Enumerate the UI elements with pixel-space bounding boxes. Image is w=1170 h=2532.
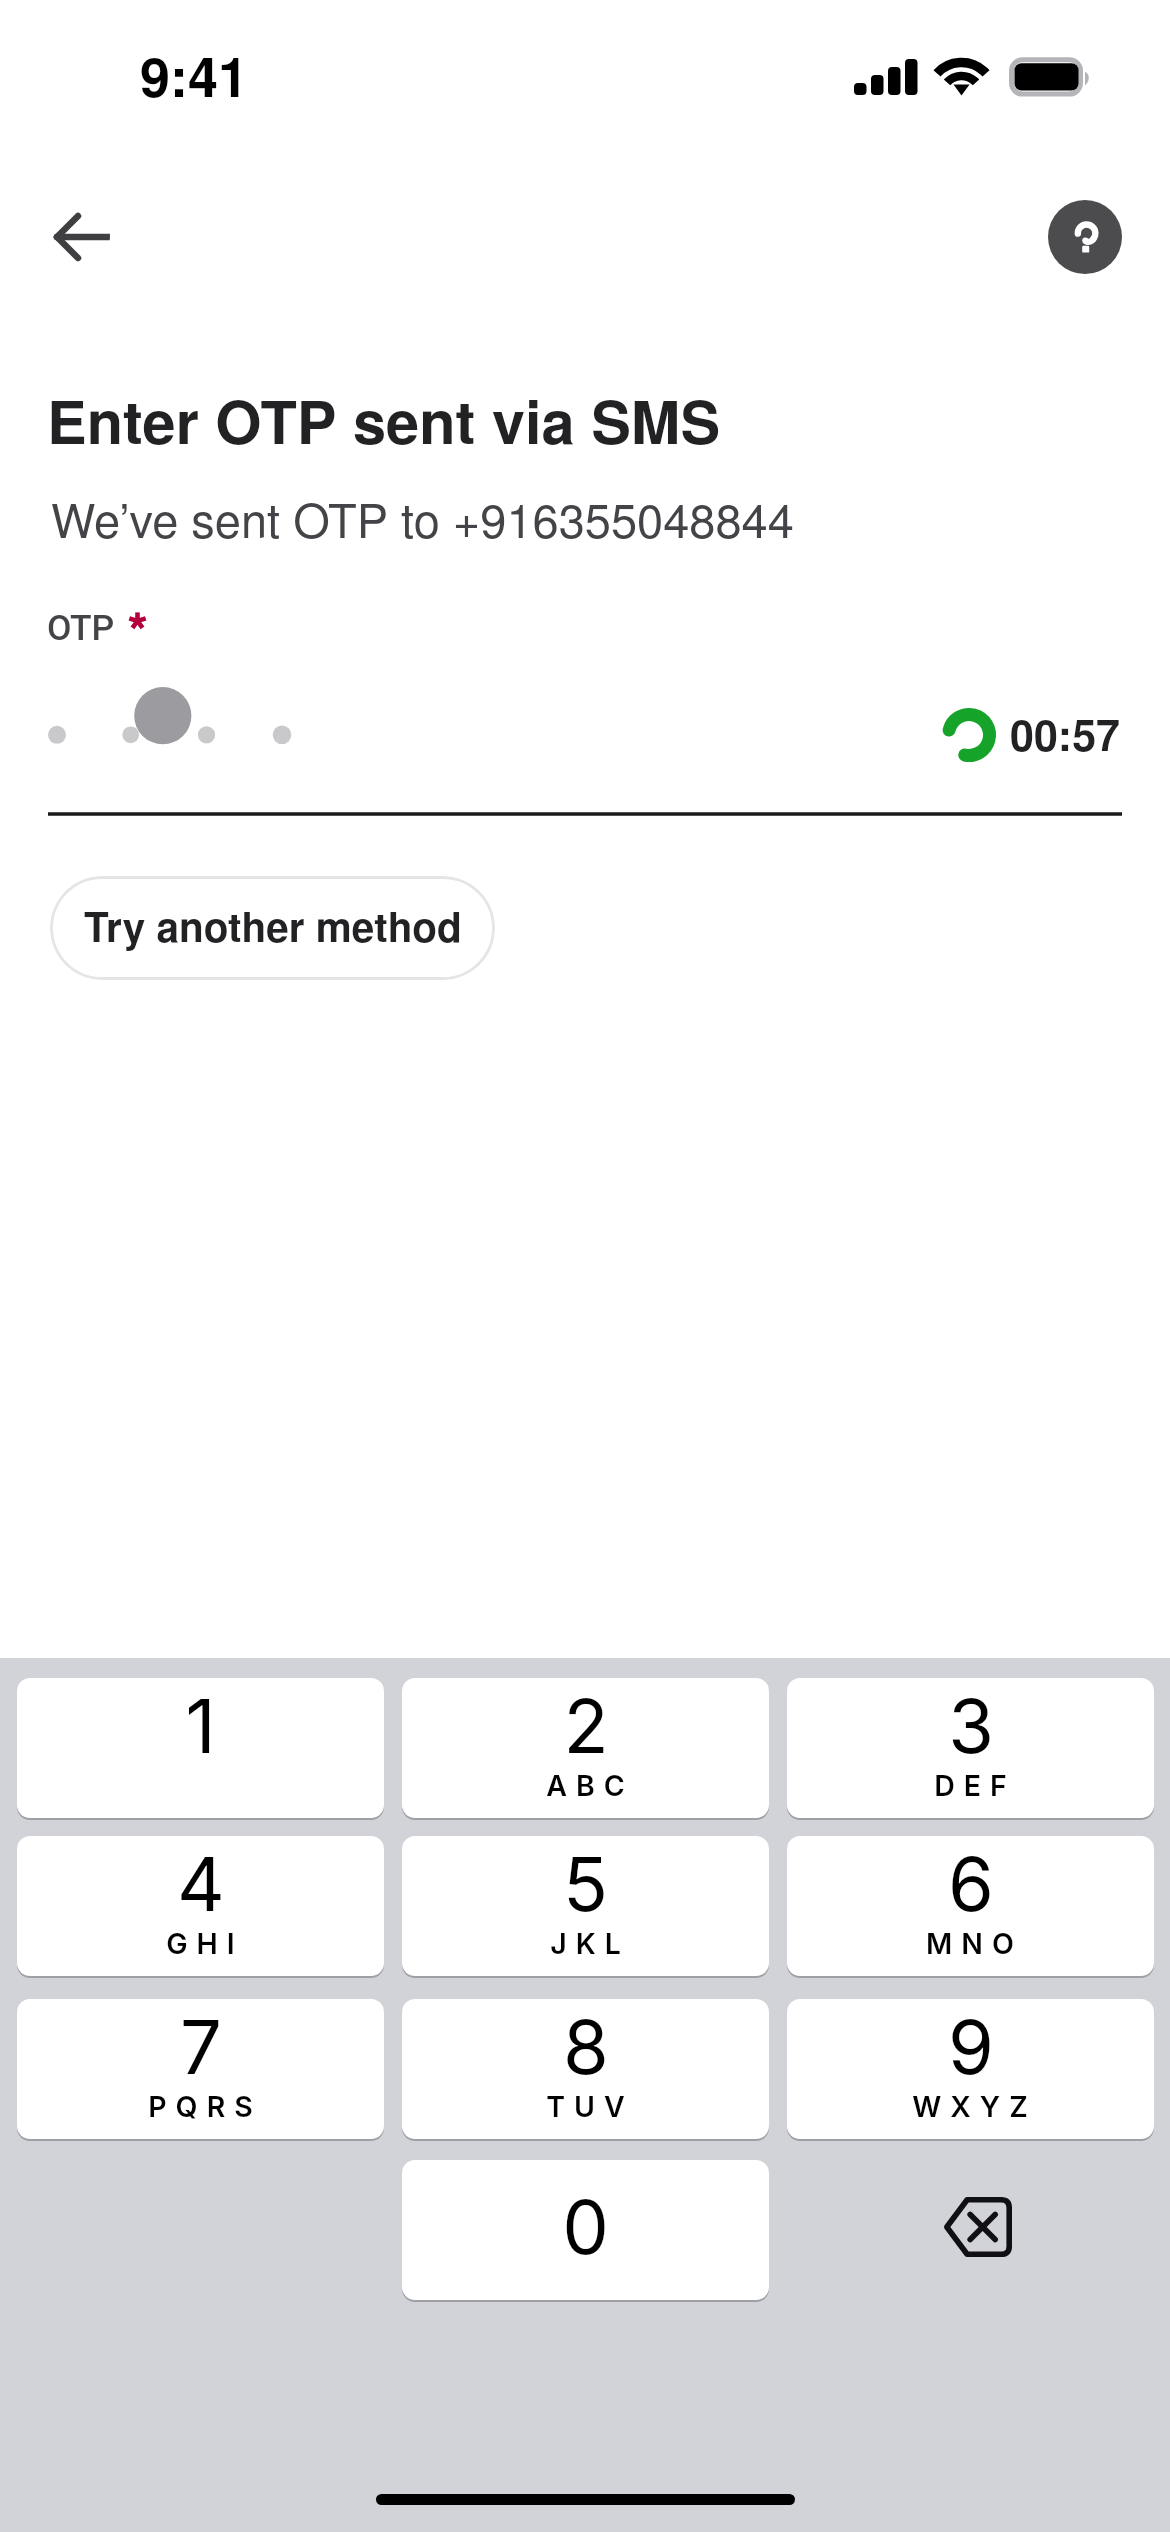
button[interactable]: 2 bbox=[402, 1678, 769, 1818]
staticText: 5 bbox=[563, 1839, 608, 1929]
staticText: 3 bbox=[948, 1681, 994, 1771]
staticText: 2 bbox=[563, 1681, 609, 1771]
button[interactable]: Help bbox=[1048, 200, 1122, 274]
button[interactable]: 6 bbox=[787, 1836, 1154, 1976]
staticText: 8 bbox=[563, 2002, 609, 2092]
staticText: TUV bbox=[546, 2089, 634, 2123]
button[interactable]: 7 bbox=[17, 1999, 384, 2139]
staticText: GHI bbox=[166, 1926, 244, 1960]
button[interactable]: 0 bbox=[402, 2160, 769, 2300]
button[interactable]: 4 bbox=[17, 1836, 384, 1976]
button[interactable]: 9 bbox=[787, 1999, 1154, 2139]
button[interactable]: 1 bbox=[17, 1678, 384, 1818]
staticText: PQRS bbox=[148, 2089, 262, 2123]
button[interactable]: 8 bbox=[402, 1999, 769, 2139]
staticText: 0 bbox=[562, 2182, 609, 2272]
button[interactable]: Try another method bbox=[50, 876, 495, 980]
staticText: MNO bbox=[926, 1926, 1023, 1960]
staticText: WXYZ bbox=[912, 2089, 1037, 2123]
staticText: 7 bbox=[180, 2002, 222, 2092]
staticText: JKL bbox=[550, 1926, 630, 1960]
staticText: 00:57 bbox=[1010, 703, 1120, 765]
staticText: 4 bbox=[177, 1839, 225, 1929]
button[interactable]: Backspace bbox=[787, 2160, 1154, 2300]
staticText: Try another method bbox=[84, 896, 462, 954]
staticText: 1 bbox=[185, 1681, 216, 1771]
button[interactable]: Back bbox=[12, 192, 110, 282]
staticText: ABC bbox=[546, 1768, 634, 1802]
button[interactable]: OTP input bbox=[48, 670, 1122, 816]
staticText: OTP bbox=[47, 607, 115, 649]
staticText: 9 bbox=[948, 2002, 994, 2092]
staticText: We’ve sent OTP to +916355048844 bbox=[51, 484, 794, 551]
staticText: 9:41 bbox=[140, 36, 249, 113]
button[interactable]: 5 bbox=[402, 1836, 769, 1976]
button[interactable]: 3 bbox=[787, 1678, 1154, 1818]
staticText: Enter OTP sent via SMS bbox=[47, 377, 721, 462]
staticText: DEF bbox=[934, 1768, 1016, 1802]
staticText: 6 bbox=[948, 1839, 994, 1929]
